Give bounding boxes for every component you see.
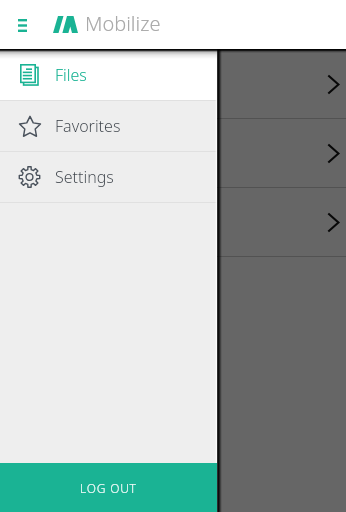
staticText: LOG OUT (80, 480, 137, 496)
staticText: Files (55, 64, 87, 86)
staticText: Mobilize (85, 10, 161, 37)
button[interactable] (0, 119, 346, 188)
button[interactable]: Favorites (0, 101, 217, 151)
button[interactable] (0, 50, 346, 119)
button[interactable]: Settings (0, 152, 217, 202)
staticText: Favorites (55, 115, 121, 137)
button[interactable]: Close navigation drawer (0, 0, 346, 512)
staticText: Settings (55, 166, 114, 188)
button[interactable]: Files (0, 50, 217, 100)
button[interactable] (0, 188, 346, 257)
button[interactable]: LOG OUT (0, 463, 217, 512)
button[interactable]: Open navigation menu (0, 0, 45, 49)
